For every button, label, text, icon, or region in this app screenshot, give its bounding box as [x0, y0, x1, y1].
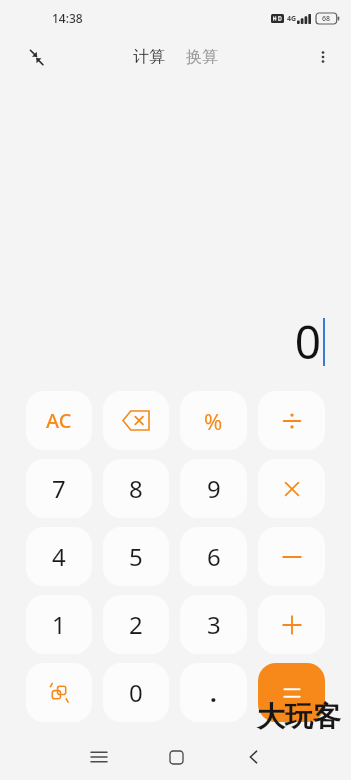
staticText: 5 [129, 540, 143, 573]
staticText: 0 [129, 676, 143, 709]
staticText: 换算 [186, 47, 218, 67]
staticText: 大玩客 [257, 699, 341, 734]
staticText: 4 [52, 540, 66, 573]
button[interactable]: Plus [258, 595, 325, 654]
button[interactable]: Collapse [20, 41, 52, 73]
button[interactable]: % [180, 391, 247, 450]
staticText: . [210, 676, 217, 709]
button[interactable]: 7 [26, 459, 92, 518]
button[interactable]: Equals [258, 663, 325, 722]
staticText: 68 [322, 14, 331, 24]
button[interactable]: 计算 [129, 43, 169, 71]
staticText: 7 [52, 472, 66, 505]
button[interactable]: Backspace [103, 391, 169, 450]
staticText: 6 [207, 540, 221, 573]
staticText: 计算 [133, 47, 165, 67]
button[interactable]: Multiply [258, 459, 325, 518]
button[interactable]: 0 [103, 663, 169, 722]
staticText: 0 [294, 310, 321, 373]
staticText: 8 [129, 472, 143, 505]
staticText: 4G [287, 14, 297, 24]
staticText: 2 [129, 608, 143, 641]
button[interactable]: Back [233, 737, 273, 777]
staticText: 3 [207, 608, 221, 641]
button[interactable]: 9 [180, 459, 247, 518]
button[interactable]: 2 [103, 595, 169, 654]
button[interactable]: Home [156, 737, 196, 777]
button[interactable]: 8 [103, 459, 169, 518]
button[interactable]: 换算 [182, 43, 222, 71]
button[interactable]: More options [307, 41, 339, 73]
button[interactable]: Recents [79, 737, 119, 777]
button[interactable]: Minus [258, 527, 325, 586]
staticText: % [204, 406, 223, 436]
staticText: 1 [52, 608, 66, 641]
button[interactable]: . [180, 663, 247, 722]
button[interactable]: AC [26, 391, 92, 450]
button[interactable]: Divide [258, 391, 325, 450]
button[interactable]: 5 [103, 527, 169, 586]
button[interactable]: 4 [26, 527, 92, 586]
button[interactable]: Scientific functions [26, 663, 92, 722]
staticText: 14:38 [52, 10, 83, 26]
button[interactable]: 3 [180, 595, 247, 654]
button[interactable]: 6 [180, 527, 247, 586]
staticText: AC [46, 407, 72, 434]
button[interactable]: 1 [26, 595, 92, 654]
staticText: 9 [207, 472, 221, 505]
